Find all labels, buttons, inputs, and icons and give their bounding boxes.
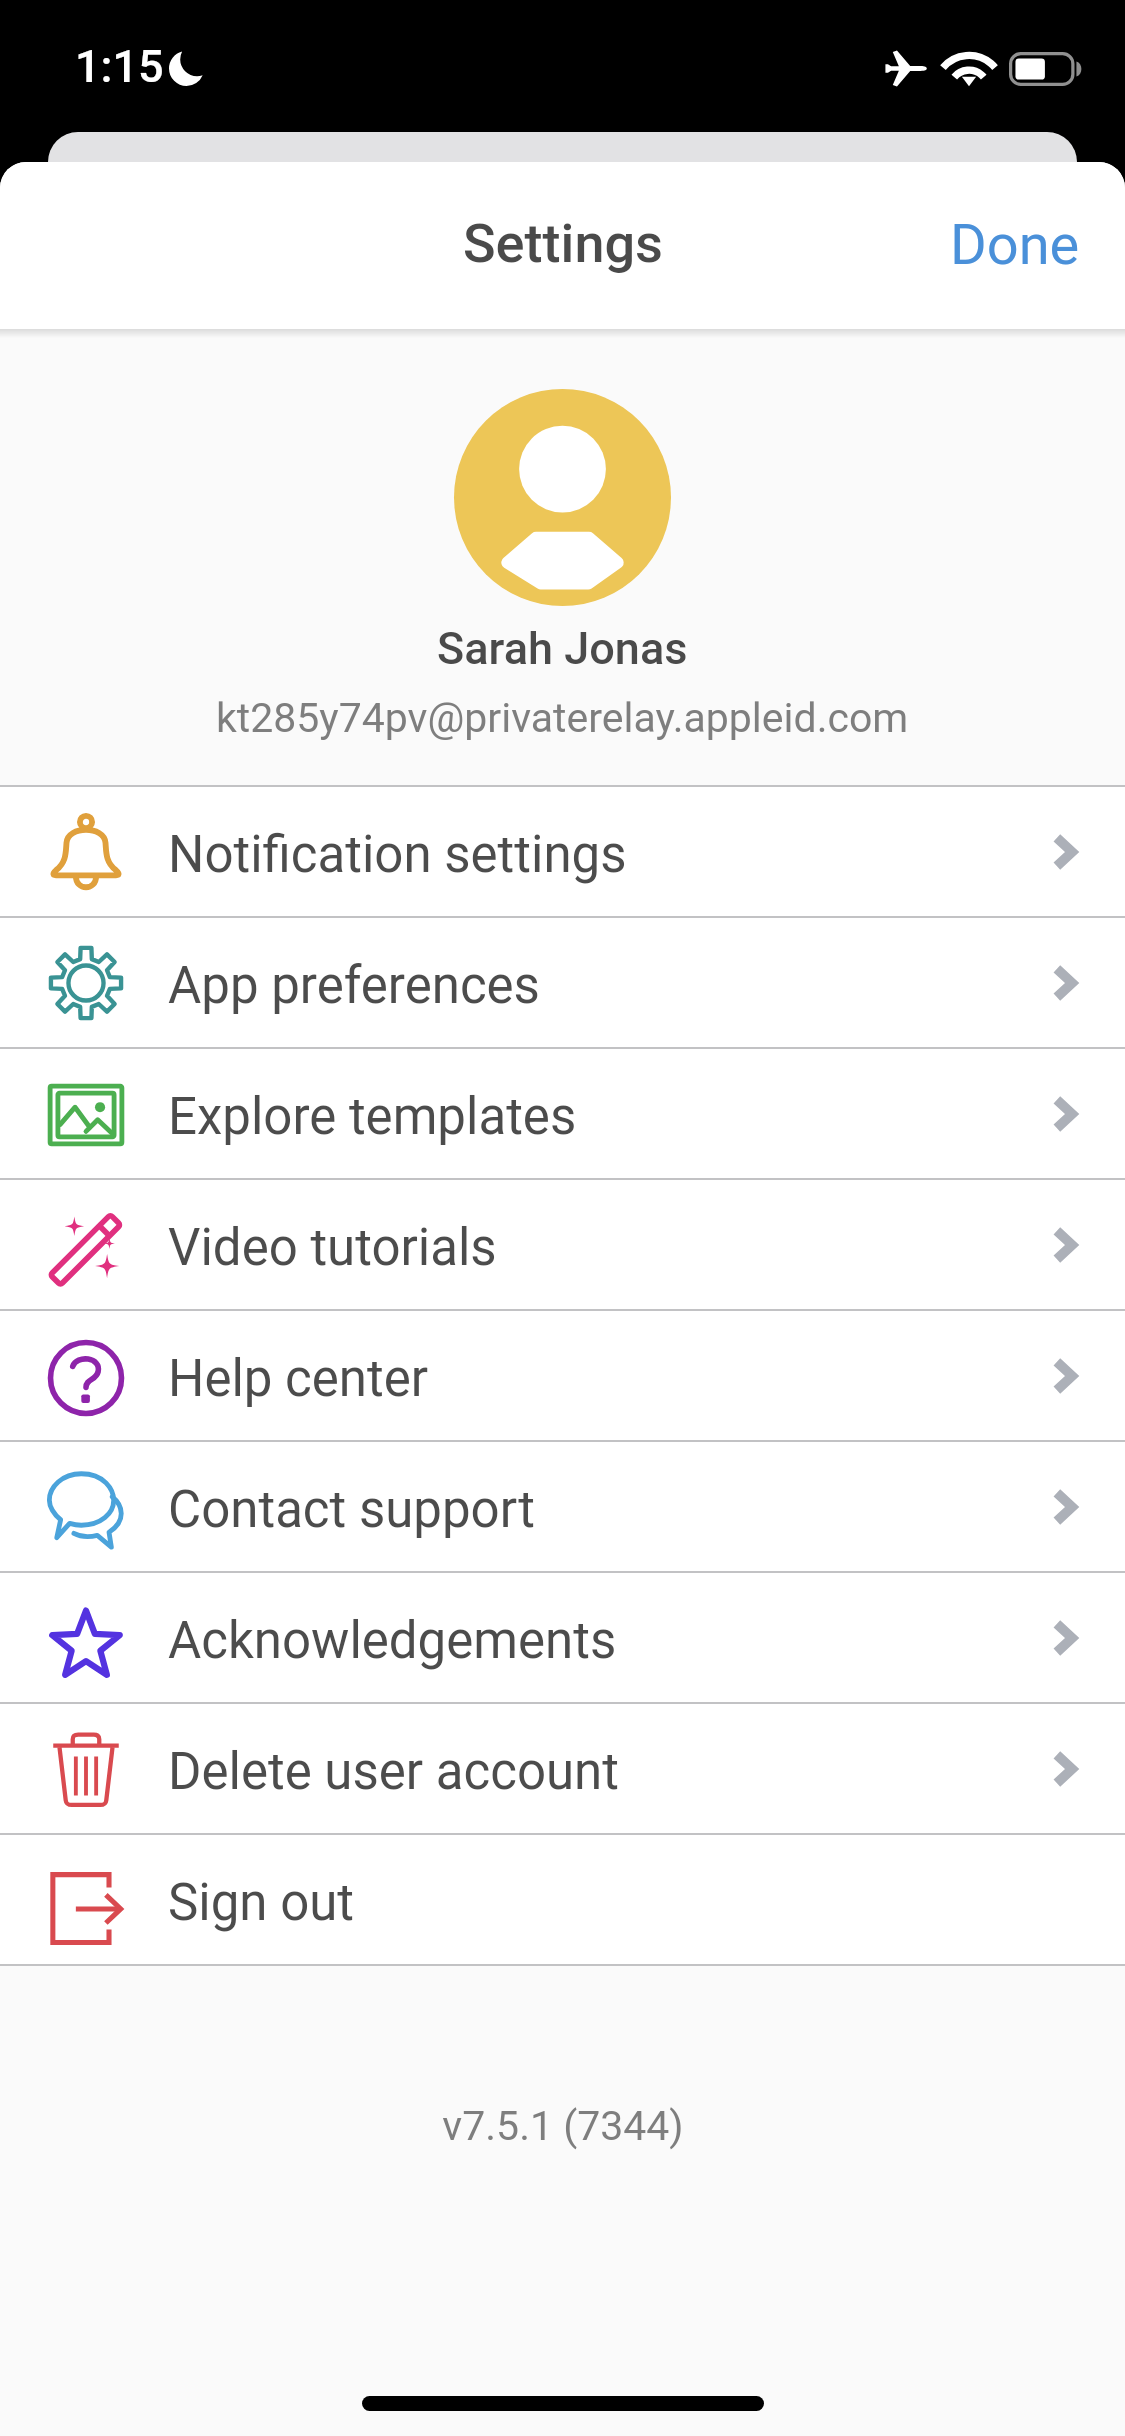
other: Open Video tutorials: [1052, 1226, 1077, 1264]
staticText: kt285y74pv@privaterelay.appleid.com: [216, 694, 909, 742]
button[interactable]: Video tutorials: [0, 1180, 1125, 1309]
staticText: Sarah Jonas: [437, 622, 688, 675]
staticText: App preferences: [168, 956, 540, 1016]
staticText: Contact support: [168, 1480, 535, 1540]
button[interactable]: Profile photo: [454, 389, 671, 606]
staticText: Notification settings: [168, 825, 627, 885]
staticText: Help center: [168, 1349, 429, 1409]
staticText: Explore templates: [168, 1087, 577, 1147]
staticText: Acknowledgements: [168, 1611, 617, 1671]
button[interactable]: Done: [901, 183, 1125, 309]
staticText: Settings: [463, 212, 663, 275]
staticText: Sign out: [168, 1873, 355, 1933]
staticText: Done: [950, 212, 1080, 278]
button[interactable]: Contact support: [0, 1442, 1125, 1571]
other: Open Delete user account: [1052, 1750, 1077, 1788]
other: Open Contact support: [1052, 1488, 1077, 1526]
staticText: Video tutorials: [168, 1218, 497, 1278]
button[interactable]: Explore templates: [0, 1049, 1125, 1178]
other: Open Notification settings: [1052, 833, 1077, 871]
other: Open Explore templates: [1052, 1095, 1077, 1133]
button[interactable]: App preferences: [0, 918, 1125, 1047]
button[interactable]: Sign out: [0, 1835, 1125, 1964]
other: Open Acknowledgements: [1052, 1619, 1077, 1657]
staticText: 1:15: [75, 40, 164, 93]
other: Open Help center: [1052, 1357, 1077, 1395]
button[interactable]: Help center: [0, 1311, 1125, 1440]
other: Open App preferences: [1052, 964, 1077, 1002]
button[interactable]: Delete user account: [0, 1704, 1125, 1833]
staticText: v7.5.1 (7344): [442, 2102, 684, 2150]
button[interactable]: Acknowledgements: [0, 1573, 1125, 1702]
staticText: Delete user account: [168, 1742, 619, 1802]
button[interactable]: Notification settings: [0, 787, 1125, 916]
